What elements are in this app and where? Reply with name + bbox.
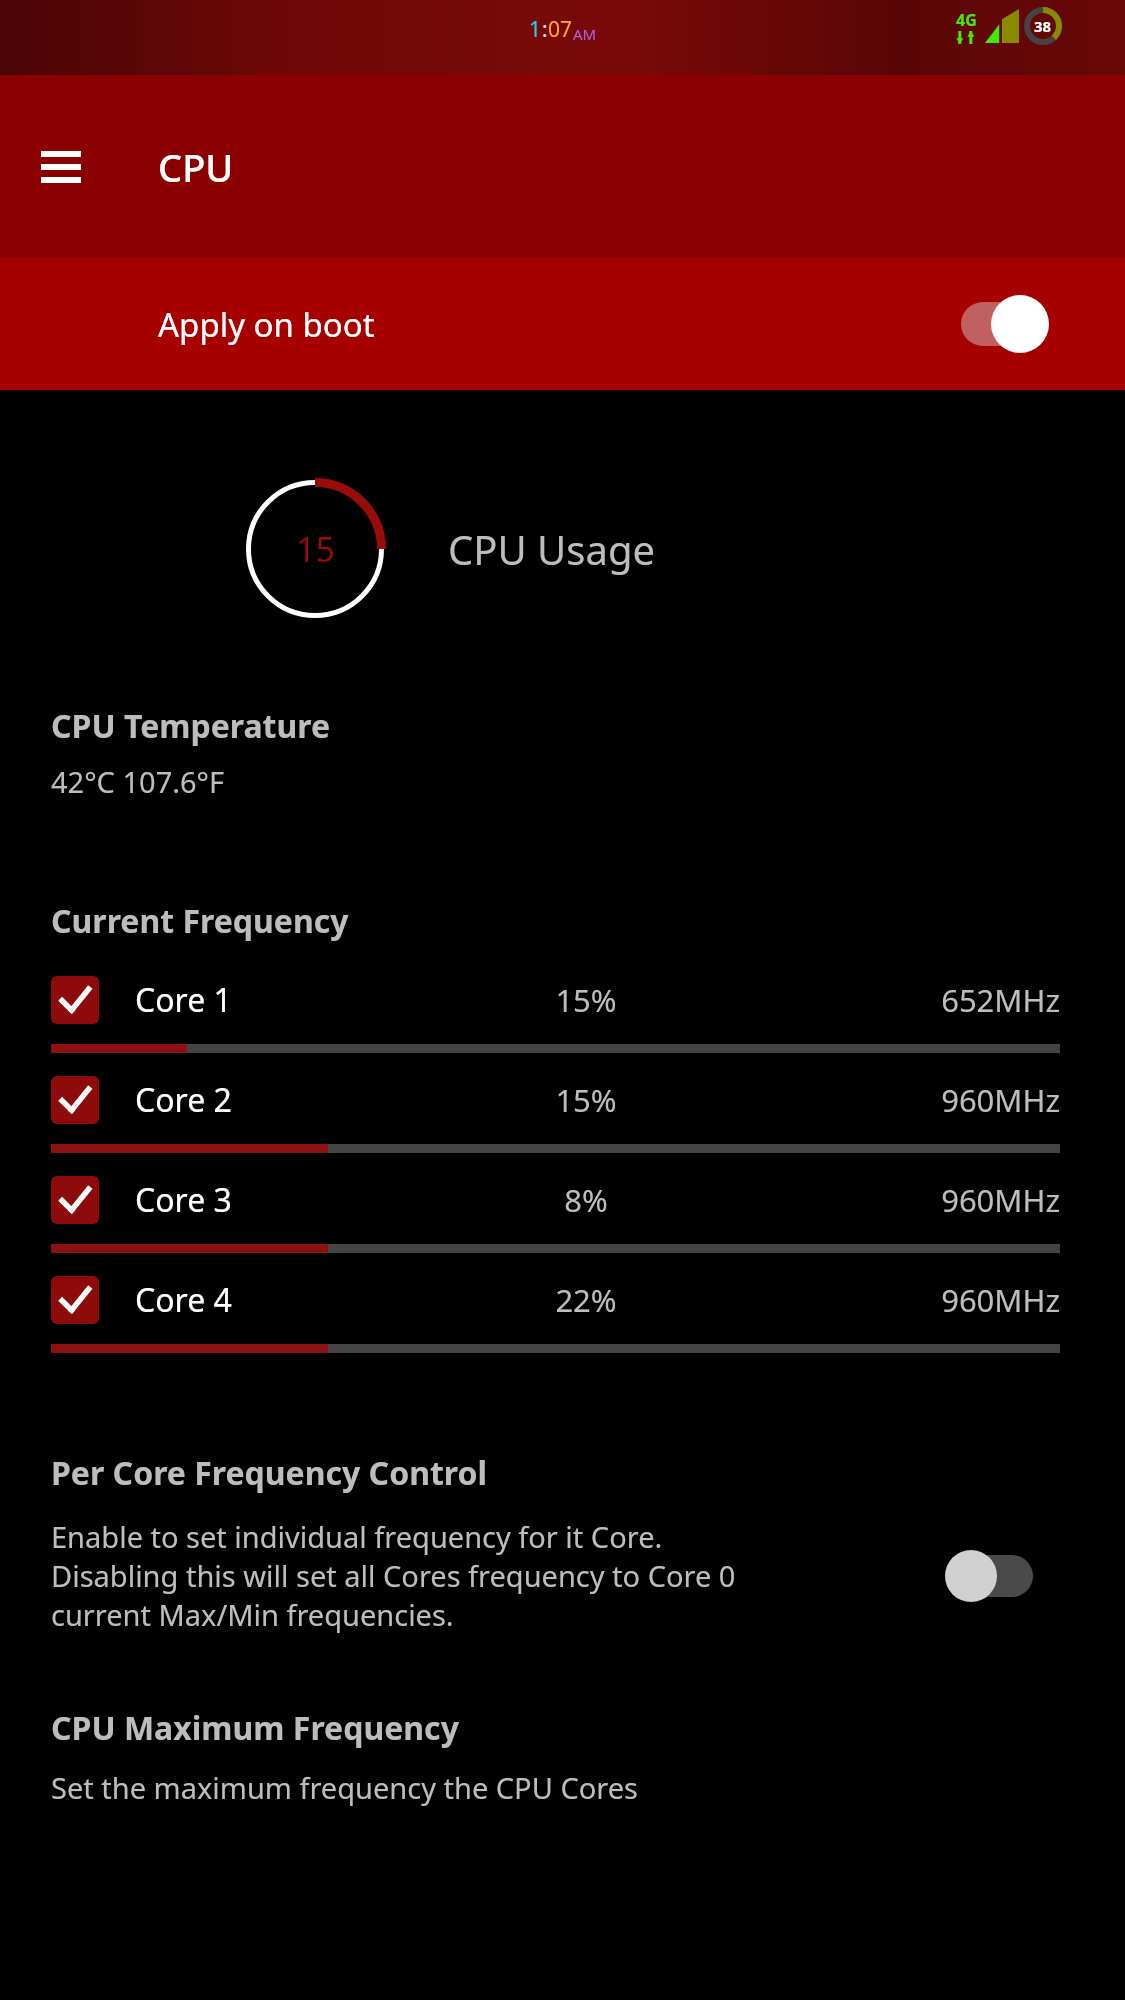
button[interactable]: Core 2	[0, 1071, 1125, 1171]
staticText: CPU Usage	[448, 522, 656, 576]
staticText: Set the maximum frequency the CPU Cores	[51, 1768, 638, 1807]
staticText: current Max/Min frequencies.	[51, 1595, 454, 1634]
staticText: 15	[296, 526, 335, 572]
staticText: Disabling this will set all Cores freque…	[51, 1556, 736, 1595]
button[interactable]: Apply on boot	[0, 258, 1125, 390]
staticText: Enable to set individual frequency for i…	[51, 1517, 663, 1556]
staticText: 42°C 107.6°F	[51, 762, 225, 801]
staticText: CPU Maximum Frequency	[51, 1706, 459, 1750]
button[interactable]: Core 1	[0, 971, 1125, 1071]
button[interactable]: Core 4	[0, 1271, 1125, 1371]
staticText: Current Frequency	[51, 899, 349, 943]
staticText: 960MHz	[941, 1079, 1060, 1121]
staticText: Apply on boot	[158, 302, 375, 347]
staticText: AM	[573, 24, 597, 44]
staticText: CPU Temperature	[51, 704, 331, 748]
staticText: :	[542, 15, 548, 44]
staticText: 8%	[486, 1179, 686, 1221]
staticText: CPU	[158, 141, 234, 193]
staticText: 652MHz	[941, 979, 1060, 1021]
staticText: Core 3	[135, 1178, 232, 1222]
staticText: 4G	[956, 9, 977, 31]
staticText: 22%	[486, 1279, 686, 1321]
staticText: 960MHz	[941, 1279, 1060, 1321]
button[interactable]: Enable to set individual frequency for i…	[0, 1517, 1125, 1634]
staticText: 15%	[486, 1079, 686, 1121]
staticText: Per Core Frequency Control	[51, 1451, 488, 1495]
staticText: Core 4	[135, 1278, 232, 1322]
staticText: 960MHz	[941, 1179, 1060, 1221]
staticText: 07	[548, 15, 573, 44]
staticText: 1	[529, 15, 542, 44]
button[interactable]: Core 3	[0, 1171, 1125, 1271]
staticText: 15%	[486, 979, 686, 1021]
staticText: Core 1	[135, 978, 232, 1022]
staticText: Core 2	[135, 1078, 232, 1122]
staticText: 38	[1034, 16, 1052, 36]
button[interactable]: Open navigation menu	[30, 136, 92, 198]
